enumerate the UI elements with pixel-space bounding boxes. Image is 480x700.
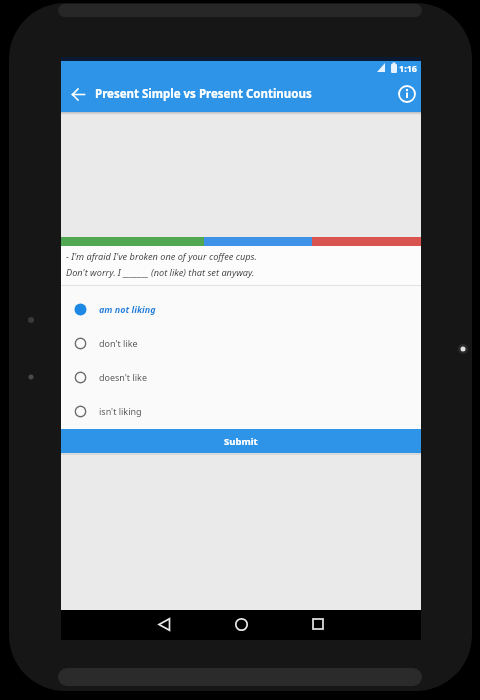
button[interactable]: [150, 610, 178, 638]
staticText: am not liking: [99, 303, 156, 315]
staticText: Submit: [224, 435, 258, 448]
button[interactable]: [61, 77, 95, 111]
staticText: Don't worry. I _______ (not like) that s…: [66, 266, 255, 279]
button[interactable]: [227, 610, 255, 638]
button[interactable]: [393, 80, 421, 108]
staticText: - I'm afraid I've broken one of your cof…: [66, 250, 257, 263]
staticText: isn't liking: [99, 405, 142, 417]
button[interactable]: don't like: [61, 326, 421, 360]
staticText: 1:16: [399, 62, 417, 74]
button[interactable]: isn't liking: [61, 394, 421, 428]
button[interactable]: Submit: [61, 429, 421, 453]
button[interactable]: doesn't like: [61, 360, 421, 394]
button[interactable]: [304, 610, 332, 638]
staticText: Present Simple vs Present Continuous: [95, 86, 312, 102]
staticText: don't like: [99, 337, 138, 349]
staticText: doesn't like: [99, 371, 147, 383]
button[interactable]: am not liking: [61, 292, 421, 326]
